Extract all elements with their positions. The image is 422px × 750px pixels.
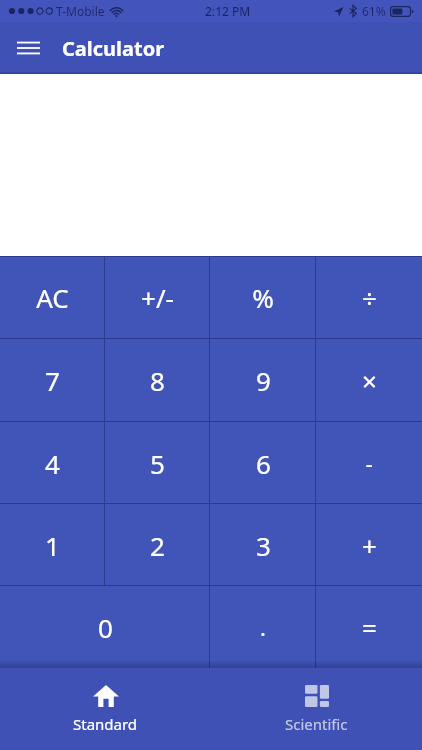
button[interactable]: 6 <box>210 422 316 504</box>
button[interactable]: 3 <box>210 504 316 586</box>
staticText: 3 <box>256 528 271 563</box>
button[interactable]: 8 <box>105 339 210 422</box>
staticText: 6 <box>256 446 271 481</box>
staticText: % <box>252 280 274 315</box>
staticText: 5 <box>150 446 165 481</box>
staticText: = <box>362 610 377 645</box>
button[interactable]: % <box>210 256 316 339</box>
staticText: 0 <box>98 610 113 645</box>
button[interactable]: 9 <box>210 339 316 422</box>
staticText: 2 <box>150 528 165 563</box>
staticText: 7 <box>45 363 60 398</box>
staticText: 9 <box>256 363 271 398</box>
staticText: 61% <box>362 3 386 19</box>
button[interactable]: - <box>316 422 422 504</box>
button[interactable]: Standard <box>0 668 211 750</box>
staticText: 8 <box>150 363 165 398</box>
button[interactable]: +/- <box>105 256 210 339</box>
button[interactable]: 7 <box>0 339 105 422</box>
staticText: Scientific <box>285 714 348 734</box>
staticText: 2:12 PM <box>205 3 251 19</box>
staticText: Standard <box>73 714 138 734</box>
staticText: 1 <box>45 528 60 563</box>
staticText: ÷ <box>362 280 377 315</box>
button[interactable]: 2 <box>105 504 210 586</box>
staticText: +/- <box>141 280 174 315</box>
staticText: 4 <box>45 446 60 481</box>
button[interactable]: Scientific <box>211 668 422 750</box>
button[interactable]: × <box>316 339 422 422</box>
staticText: AC <box>36 280 69 315</box>
button[interactable]: 0 <box>0 586 210 668</box>
button[interactable]: 4 <box>0 422 105 504</box>
button[interactable]: . <box>210 586 316 668</box>
staticText: Calculator <box>62 35 165 62</box>
button[interactable]: Open navigation menu <box>4 24 52 72</box>
button[interactable]: 5 <box>105 422 210 504</box>
staticText: × <box>362 363 377 398</box>
staticText: + <box>362 528 377 563</box>
button[interactable]: 1 <box>0 504 105 586</box>
staticText: T-Mobile <box>56 3 105 19</box>
button[interactable]: ÷ <box>316 256 422 339</box>
button[interactable]: AC <box>0 256 105 339</box>
button[interactable]: = <box>316 586 422 668</box>
staticText: . <box>260 612 266 642</box>
staticText: - <box>365 448 373 478</box>
button[interactable]: + <box>316 504 422 586</box>
